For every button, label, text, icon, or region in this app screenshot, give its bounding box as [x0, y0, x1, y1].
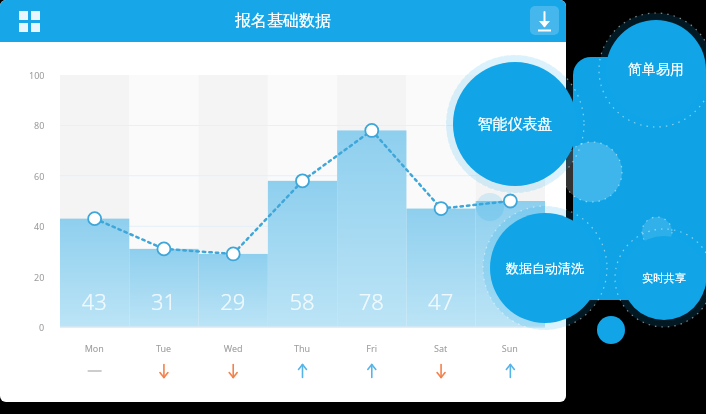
button[interactable] — [490, 213, 600, 323]
button[interactable]: Download — [528, 5, 558, 35]
button[interactable] — [606, 20, 706, 120]
button[interactable]: Menu — [14, 9, 40, 33]
button[interactable] — [622, 236, 706, 320]
button[interactable] — [453, 62, 577, 186]
